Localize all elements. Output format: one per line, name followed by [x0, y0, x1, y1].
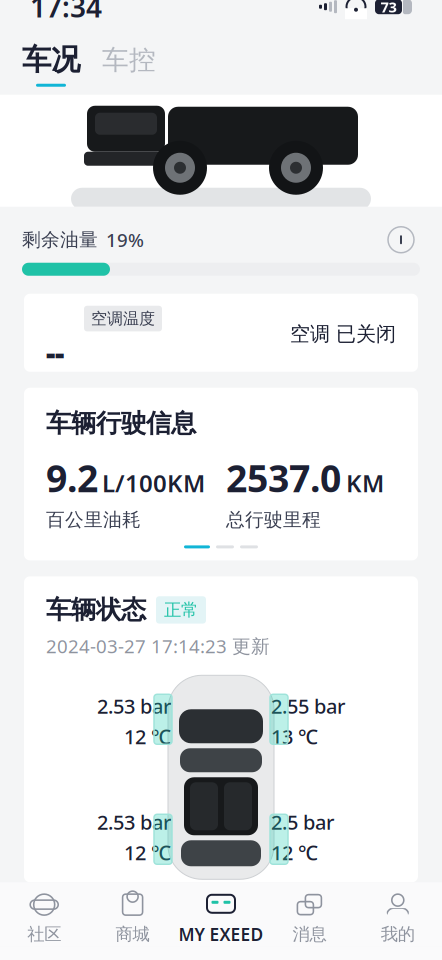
- staticText: 总行驶里程: [226, 508, 321, 531]
- staticText: 正常: [164, 599, 198, 621]
- staticText: MY EXEED: [178, 923, 263, 946]
- button[interactable]: 空调温度: [24, 294, 418, 372]
- staticText: 13 ℃: [271, 723, 318, 750]
- staticText: --: [46, 333, 64, 372]
- button[interactable]: 商城: [88, 892, 177, 945]
- staticText: 百公里油耗: [46, 508, 141, 531]
- staticText: 空调温度: [91, 309, 155, 328]
- staticText: 车况: [22, 42, 80, 78]
- button[interactable]: 消息: [265, 892, 354, 945]
- staticText: 73: [380, 0, 396, 16]
- staticText: 2537.0: [226, 453, 341, 502]
- button[interactable]: 油量详情: [386, 225, 416, 255]
- staticText: 商城: [116, 924, 150, 945]
- staticText: 2024-03-27 17:14:23 更新: [46, 633, 270, 658]
- button[interactable]: 社区: [0, 892, 88, 945]
- staticText: KM: [346, 467, 384, 499]
- button[interactable]: 我的: [354, 892, 442, 945]
- staticText: 2.53 bar: [97, 809, 171, 835]
- button[interactable]: 车控: [102, 42, 156, 85]
- staticText: 社区: [27, 924, 61, 945]
- staticText: 2.53 bar: [97, 693, 171, 719]
- button[interactable]: 车况: [22, 42, 80, 87]
- staticText: 2.55 bar: [271, 693, 345, 719]
- staticText: 12 ℃: [271, 839, 318, 866]
- button[interactable]: MY EXEED: [177, 891, 265, 946]
- staticText: 12 ℃: [124, 723, 171, 750]
- staticText: 空调 已关闭: [290, 322, 396, 346]
- staticText: 车辆行驶信息: [46, 408, 196, 439]
- staticText: L/100KM: [102, 467, 205, 499]
- staticText: 2.5 bar: [271, 809, 334, 835]
- staticText: 17:34: [30, 0, 102, 25]
- staticText: 消息: [292, 924, 326, 945]
- staticText: 12 ℃: [124, 839, 171, 866]
- staticText: 剩余油量: [22, 228, 98, 251]
- staticText: 19%: [106, 227, 144, 252]
- staticText: 9.2: [46, 453, 98, 502]
- staticText: 车控: [102, 44, 156, 76]
- staticText: 车辆状态: [46, 594, 146, 625]
- staticText: 我的: [381, 924, 415, 945]
